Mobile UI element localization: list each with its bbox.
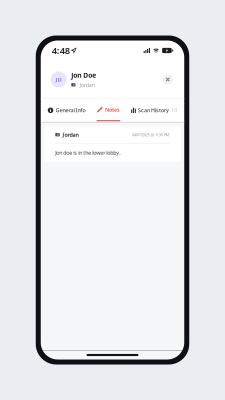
staticText: General Info xyxy=(55,107,85,114)
staticText: Jordan xyxy=(80,81,95,88)
staticText: Notes xyxy=(105,106,120,113)
staticText: Jon doe is in the lower lobby. xyxy=(55,149,120,156)
staticText: 10 xyxy=(171,107,177,114)
staticText: 4:48 xyxy=(52,44,70,57)
staticText: Jon Doe xyxy=(71,71,96,79)
button[interactable]: General Info xyxy=(48,99,86,121)
staticText: JD xyxy=(56,76,62,83)
staticText: Jordan xyxy=(62,131,78,138)
button[interactable]: Scan History xyxy=(131,99,177,121)
staticText: Scan History xyxy=(138,107,169,114)
staticText: 04/07/2025 @ 6:36 PM xyxy=(132,132,170,137)
button[interactable]: Close xyxy=(161,73,174,86)
button[interactable]: Notes xyxy=(96,99,120,121)
